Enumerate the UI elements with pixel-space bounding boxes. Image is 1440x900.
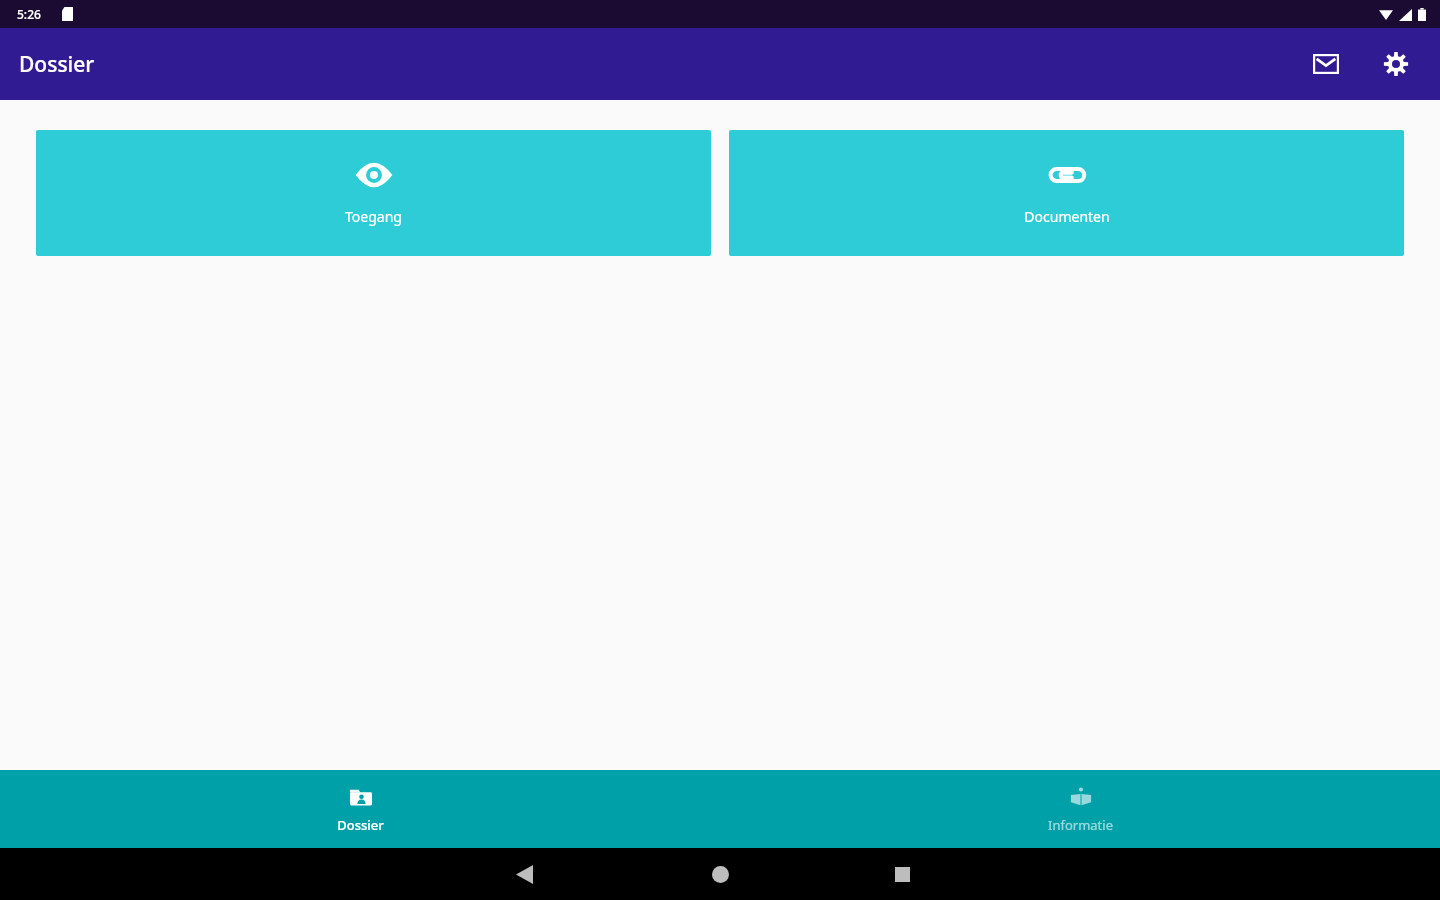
button[interactable]: Informatie	[720, 770, 1440, 848]
staticText: Documenten	[1024, 207, 1110, 226]
button[interactable]: Terug	[500, 850, 548, 898]
staticText: Dossier	[337, 816, 384, 834]
button[interactable]: Berichten	[1304, 42, 1348, 86]
button[interactable]: Instellingen	[1374, 42, 1418, 86]
button[interactable]: Toegang	[36, 130, 711, 256]
staticText: Toegang	[345, 207, 402, 226]
button[interactable]: Dossier	[0, 770, 720, 848]
staticText: 5:26	[17, 6, 41, 22]
staticText: Informatie	[1048, 816, 1113, 834]
button[interactable]: Recente apps	[878, 850, 926, 898]
staticText: Dossier	[19, 50, 95, 79]
button[interactable]: Home	[696, 850, 744, 898]
button[interactable]: Documenten	[729, 130, 1404, 256]
